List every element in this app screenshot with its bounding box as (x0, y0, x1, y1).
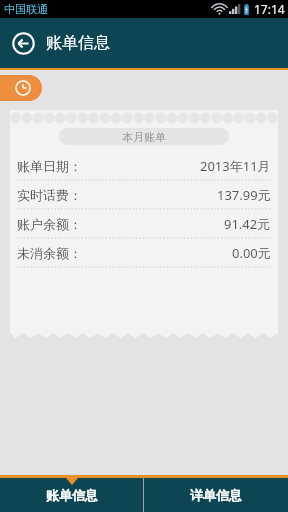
button[interactable]: Back (8, 28, 38, 58)
staticText: 账单信息 (46, 487, 98, 503)
staticText: 本月账单 (122, 130, 166, 144)
staticText: 实时话费： (17, 187, 82, 203)
staticText: 中国联通 (4, 2, 48, 16)
button[interactable]: History (0, 75, 42, 101)
staticText: 账户余额： (17, 216, 82, 232)
staticText: 91.42元 (224, 215, 271, 233)
staticText: 详单信息 (190, 487, 242, 503)
staticText: 2013年11月 (200, 157, 271, 175)
button[interactable]: 详单信息 (144, 478, 288, 512)
staticText: 137.99元 (217, 186, 271, 204)
staticText: 账单日期： (17, 158, 82, 174)
staticText: 账单信息 (46, 33, 110, 53)
staticText: 未消余额： (17, 245, 82, 261)
staticText: 17:14 (254, 1, 285, 17)
button[interactable]: 账单信息 (0, 478, 143, 512)
staticText: 0.00元 (232, 244, 271, 262)
